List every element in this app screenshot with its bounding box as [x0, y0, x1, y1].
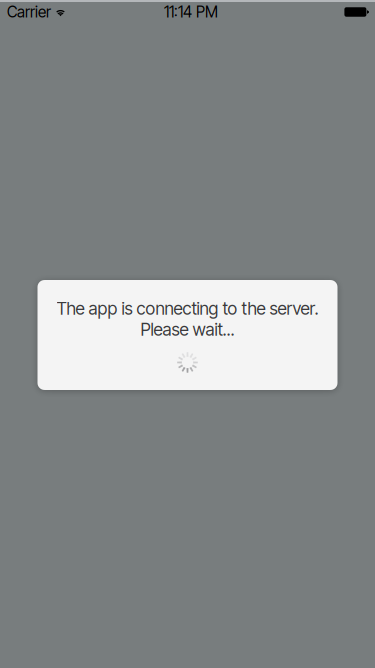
staticText: Carrier — [7, 3, 51, 21]
staticText: 11:14 PM — [164, 3, 218, 21]
staticText: Please wait... — [140, 319, 234, 340]
staticText: The app is connecting to the server. — [56, 298, 318, 319]
